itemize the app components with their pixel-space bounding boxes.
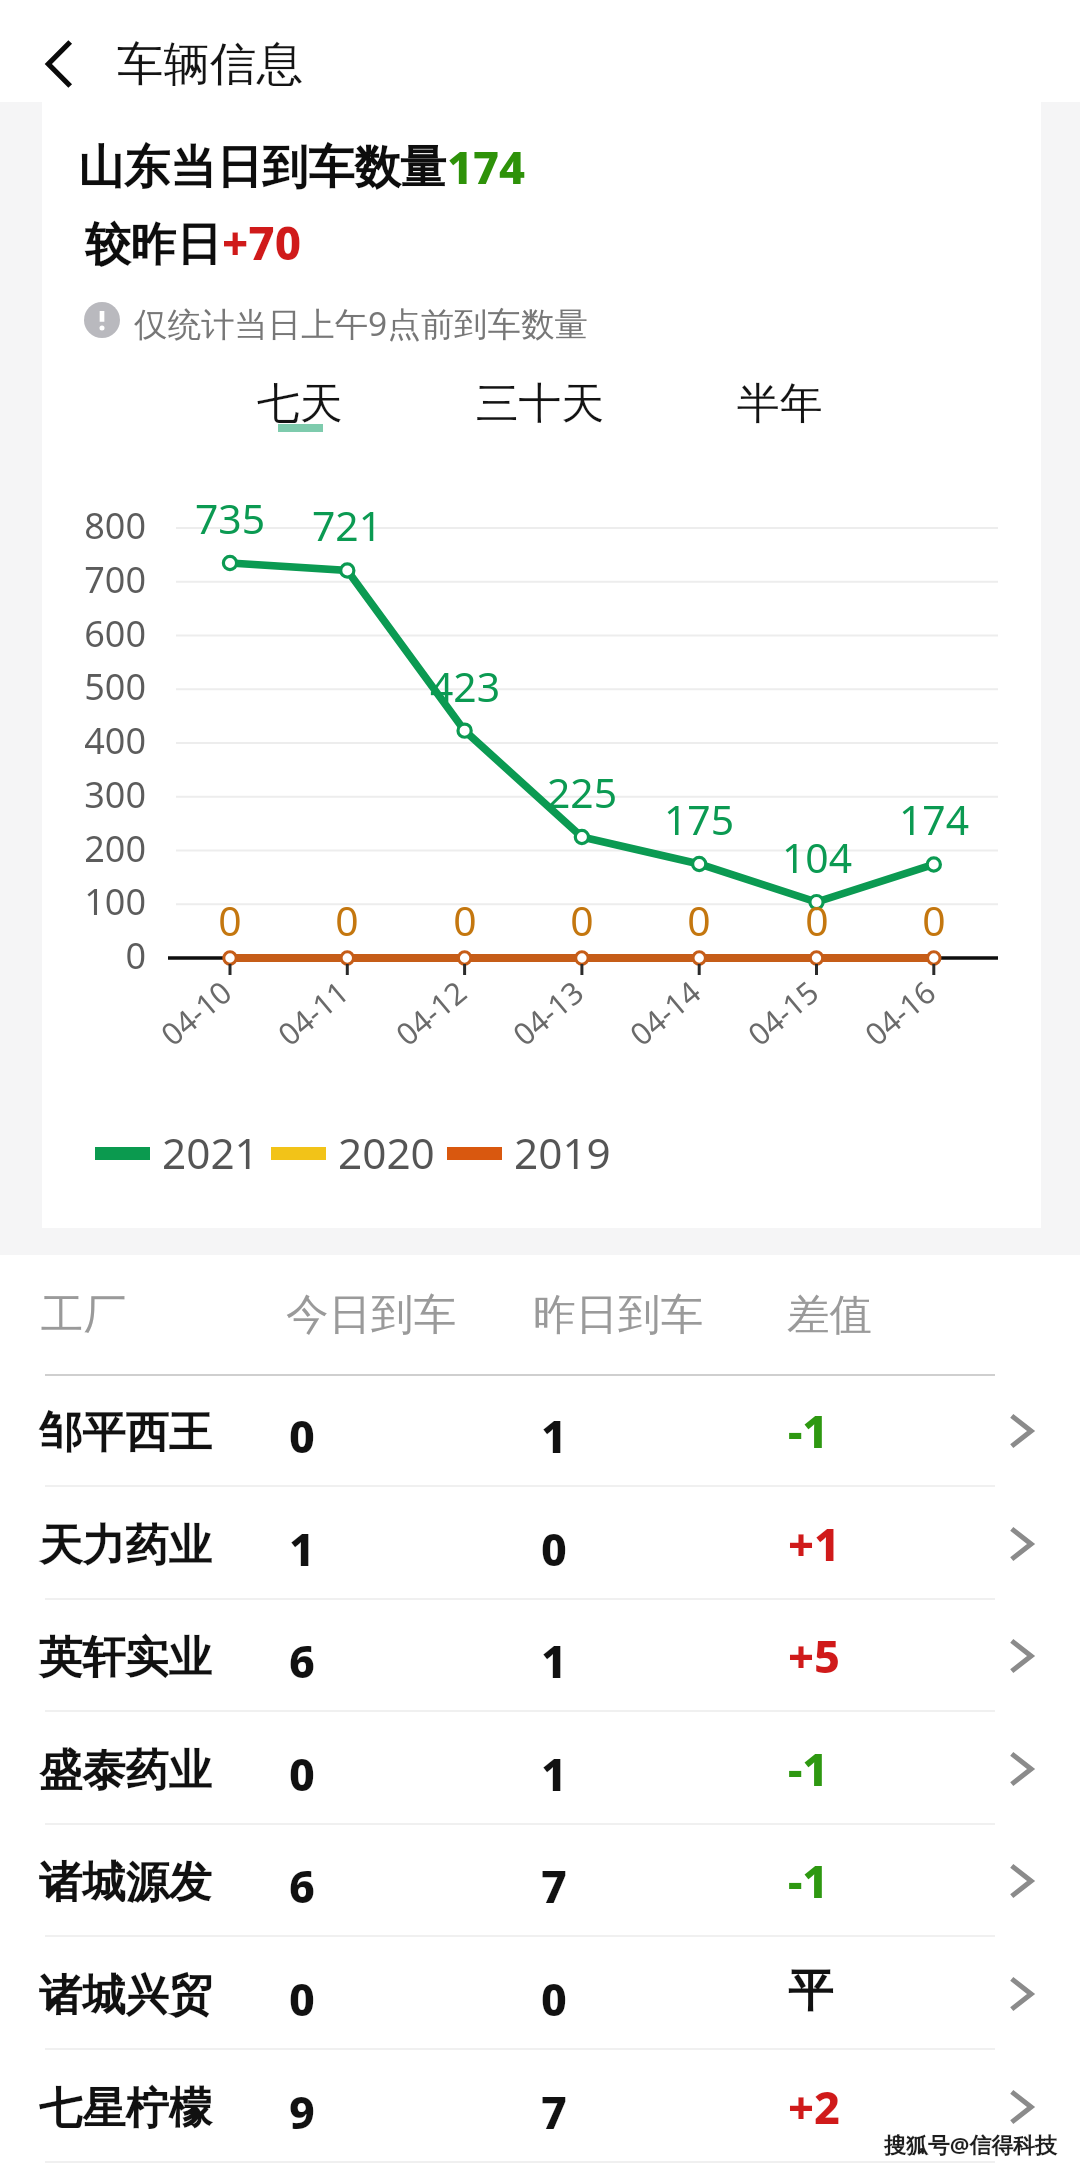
staticText: 1 <box>541 1405 567 1466</box>
staticText: 诸城源发 <box>39 1855 212 1909</box>
button[interactable]: 盛泰药业 <box>0 1712 1080 1825</box>
staticText: 英轩实业 <box>39 1630 212 1684</box>
staticText: 七星柠檬 <box>39 2081 212 2135</box>
staticText: 04-16 <box>826 971 944 1079</box>
button[interactable]: 天力药业 <box>0 1487 1080 1600</box>
staticText: 100 <box>50 877 146 926</box>
button[interactable]: 诸城兴贸 <box>0 1937 1080 2050</box>
staticText: 差值 <box>787 1288 873 1342</box>
staticText: 1 <box>289 1518 315 1579</box>
staticText: 300 <box>50 770 146 819</box>
staticText: 搜狐号@信得科技 <box>884 2130 1057 2160</box>
staticText: 平 <box>788 1963 833 2020</box>
staticText: 800 <box>50 501 146 550</box>
staticText: 三十天 <box>445 377 635 431</box>
staticText: 诸城兴贸 <box>39 1968 212 2022</box>
staticText: +2 <box>788 2076 841 2137</box>
staticText: 721 <box>287 497 407 553</box>
staticText: 7 <box>541 1855 567 1916</box>
staticText: 9 <box>289 2081 315 2142</box>
staticText: 7 <box>541 2081 567 2142</box>
staticText: 2020 <box>338 1124 435 1182</box>
staticText: 6 <box>289 1630 315 1691</box>
staticText: 2019 <box>514 1124 611 1182</box>
staticText: 2021 <box>162 1124 259 1182</box>
staticText: 较昨日 <box>85 216 222 273</box>
staticText: 6 <box>289 1855 315 1916</box>
staticText: 0 <box>425 892 505 948</box>
staticText: 车辆信息 <box>117 35 303 94</box>
staticText: 500 <box>50 662 146 711</box>
staticText: 0 <box>659 892 739 948</box>
staticText: 0 <box>50 931 146 980</box>
staticText: 仅统计当日上午9点前到车数量 <box>134 300 588 346</box>
button[interactable]: 七天 <box>205 377 395 441</box>
staticText: 七天 <box>205 377 395 431</box>
staticText: 0 <box>289 1405 315 1466</box>
staticText: -1 <box>788 1400 829 1461</box>
staticText: +70 <box>222 211 302 273</box>
staticText: 104 <box>757 829 877 885</box>
staticText: 04-11 <box>239 971 357 1079</box>
button[interactable]: 三十天 <box>445 377 635 441</box>
staticText: 0 <box>541 1968 567 2029</box>
staticText: 0 <box>307 892 387 948</box>
staticText: 700 <box>50 555 146 604</box>
staticText: 0 <box>541 1518 567 1579</box>
staticText: 工厂 <box>41 1288 127 1342</box>
staticText: 0 <box>777 892 857 948</box>
staticText: 174 <box>447 136 526 197</box>
staticText: 200 <box>50 824 146 873</box>
staticText: 半年 <box>685 377 875 431</box>
staticText: 盛泰药业 <box>39 1743 212 1797</box>
staticText: 04-15 <box>709 971 827 1079</box>
button[interactable]: 英轩实业 <box>0 1599 1080 1712</box>
staticText: 山东当日到车数量 <box>78 139 447 197</box>
staticText: 0 <box>190 892 270 948</box>
button[interactable]: 半年 <box>685 377 875 441</box>
staticText: 175 <box>639 791 759 847</box>
staticText: 天力药业 <box>39 1518 212 1572</box>
staticText: -1 <box>788 1738 829 1799</box>
staticText: 昨日到车 <box>533 1288 704 1342</box>
staticText: 1 <box>541 1743 567 1804</box>
staticText: 04-12 <box>357 971 475 1079</box>
staticText: 04-14 <box>591 971 709 1079</box>
staticText: 423 <box>405 658 525 714</box>
button[interactable]: 诸城源发 <box>0 1824 1080 1937</box>
staticText: 0 <box>542 892 622 948</box>
staticText: 1 <box>541 1630 567 1691</box>
staticText: 04-13 <box>474 971 592 1079</box>
staticText: 174 <box>874 791 994 847</box>
staticText: 400 <box>50 716 146 765</box>
staticText: 0 <box>894 892 974 948</box>
button[interactable]: Back <box>30 35 88 93</box>
staticText: 04-10 <box>122 971 240 1079</box>
staticText: 600 <box>50 609 146 658</box>
staticText: +1 <box>788 1513 841 1574</box>
staticText: 735 <box>170 490 290 546</box>
staticText: 0 <box>289 1968 315 2029</box>
staticText: 0 <box>289 1743 315 1804</box>
button[interactable]: 邹平西王 <box>0 1374 1080 1487</box>
staticText: -1 <box>788 1850 829 1911</box>
button[interactable]: 七星柠檬 <box>0 2050 1080 2163</box>
staticText: 邹平西王 <box>39 1405 212 1459</box>
staticText: +5 <box>788 1625 841 1686</box>
staticText: 今日到车 <box>286 1288 457 1342</box>
staticText: 225 <box>522 764 642 820</box>
